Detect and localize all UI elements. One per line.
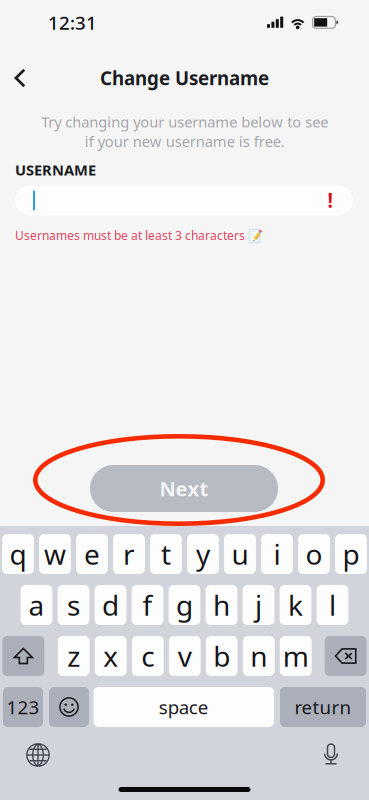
button[interactable]: Switch keyboard — [26, 743, 50, 767]
staticText: c — [141, 637, 154, 675]
button[interactable]: m — [280, 636, 312, 676]
button[interactable]: w — [39, 534, 71, 574]
staticText: n — [250, 637, 267, 675]
button[interactable]: p — [335, 534, 367, 574]
button[interactable]: 123 — [3, 687, 43, 727]
staticText: Next — [159, 475, 208, 502]
staticText: h — [213, 586, 230, 624]
staticText: s — [67, 586, 80, 624]
button[interactable]: f — [132, 585, 163, 625]
staticText: r — [123, 535, 135, 573]
staticText: USERNAME — [15, 160, 96, 179]
button[interactable]: v — [169, 636, 201, 676]
button[interactable]: Shift — [2, 636, 44, 676]
button[interactable]: b — [206, 636, 238, 676]
button[interactable]: k — [280, 585, 311, 625]
staticText: m — [283, 637, 309, 675]
staticText: w — [44, 535, 66, 573]
button[interactable]: j — [243, 585, 274, 625]
staticText: x — [103, 637, 118, 675]
staticText: t — [161, 535, 171, 573]
button[interactable]: y — [187, 534, 219, 574]
staticText: d — [102, 586, 119, 624]
button[interactable]: a — [21, 585, 52, 625]
button[interactable]: c — [132, 636, 164, 676]
staticText: Usernames must be at least 3 characters … — [15, 227, 263, 243]
staticText: 12:31 — [48, 10, 97, 35]
button[interactable]: s — [58, 585, 89, 625]
staticText: Change Username — [100, 66, 269, 90]
staticText: u — [231, 535, 248, 573]
button[interactable]: Emoji — [49, 687, 89, 727]
button[interactable]: q — [2, 534, 34, 574]
staticText: q — [9, 535, 26, 573]
button[interactable]: Next — [90, 465, 278, 512]
staticText: Try changing your username below to see … — [41, 112, 328, 151]
button[interactable]: Backspace — [325, 636, 367, 676]
staticText: l — [329, 586, 336, 624]
button[interactable]: h — [206, 585, 237, 625]
staticText: b — [213, 637, 230, 675]
button[interactable]: o — [298, 534, 330, 574]
staticText: a — [28, 586, 44, 624]
staticText: v — [178, 637, 192, 675]
staticText: f — [142, 586, 152, 624]
button[interactable]: z — [58, 636, 90, 676]
button[interactable]: i — [261, 534, 293, 574]
staticText: e — [84, 535, 100, 573]
staticText: space — [159, 695, 209, 719]
button[interactable]: u — [224, 534, 256, 574]
staticText: k — [288, 586, 303, 624]
staticText: i — [273, 535, 280, 573]
button[interactable]: e — [76, 534, 108, 574]
staticText: 123 — [6, 695, 39, 719]
staticText: j — [255, 586, 262, 624]
button[interactable]: Dictation — [320, 743, 342, 767]
staticText: z — [67, 637, 80, 675]
button[interactable]: return — [280, 687, 366, 727]
button[interactable]: n — [243, 636, 275, 676]
button[interactable]: x — [95, 636, 127, 676]
button[interactable]: t — [150, 534, 182, 574]
staticText: y — [196, 535, 210, 573]
button[interactable]: r — [113, 534, 145, 574]
button[interactable]: g — [169, 585, 200, 625]
button[interactable]: space — [93, 687, 274, 727]
staticText: p — [342, 535, 359, 573]
staticText: return — [294, 695, 351, 719]
button[interactable]: l — [317, 585, 348, 625]
staticText: o — [305, 535, 322, 573]
button[interactable]: d — [95, 585, 126, 625]
button[interactable]: Back — [0, 58, 40, 98]
staticText: g — [176, 586, 193, 624]
